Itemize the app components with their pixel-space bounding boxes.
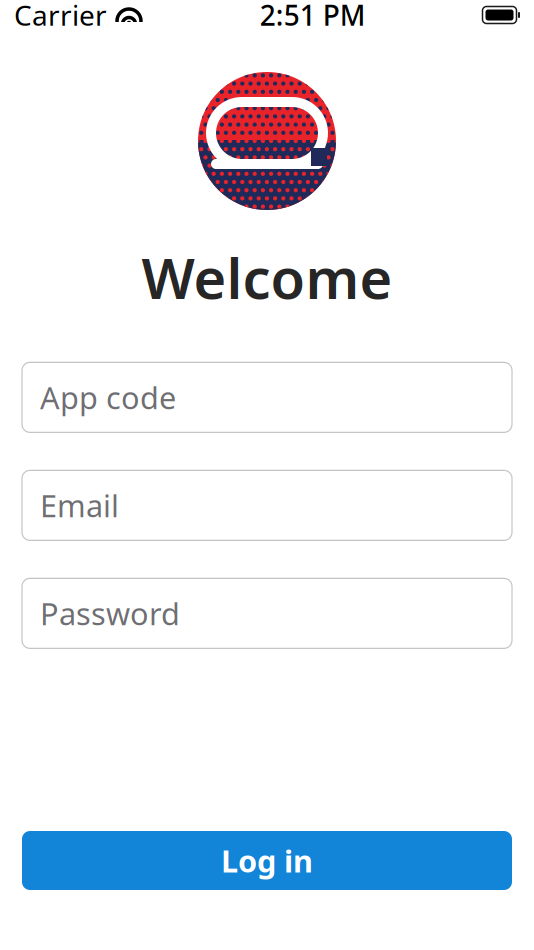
staticText: 2:51 PM [260,0,366,34]
staticText: Welcome [141,240,392,314]
staticText: Carrier [14,0,107,34]
staticText: Log in [221,840,313,881]
staticText: App code [40,377,176,418]
button[interactable]: Email [22,470,512,540]
staticText: Password [40,593,180,634]
staticText: Email [40,485,119,526]
button[interactable]: App code [22,362,512,432]
button[interactable]: Password [22,578,512,648]
button[interactable]: Log in [22,831,512,890]
